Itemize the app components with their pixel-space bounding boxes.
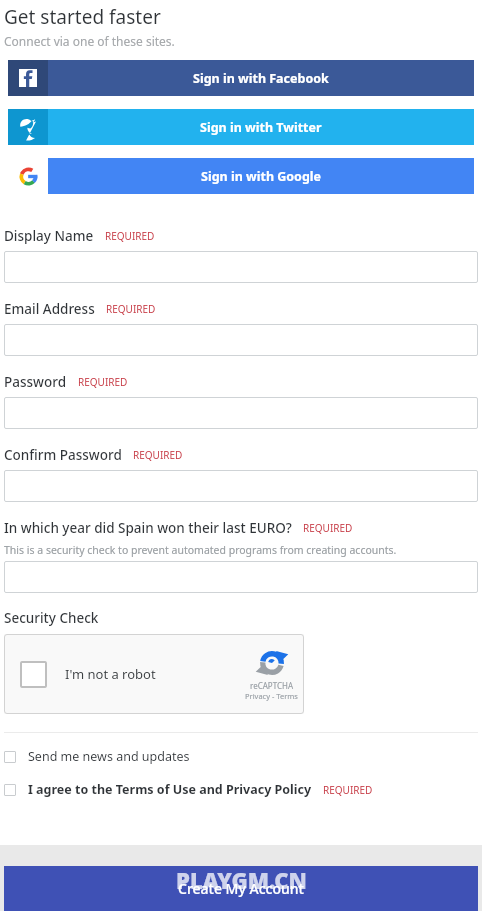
staticText: REQUIRED bbox=[78, 375, 128, 389]
staticText: Sign in with Facebook bbox=[193, 70, 329, 87]
staticText: REQUIRED bbox=[133, 448, 183, 462]
staticText: reCAPTCHA bbox=[250, 680, 294, 691]
button[interactable]: Send me news and updates bbox=[4, 748, 482, 765]
button[interactable] bbox=[4, 561, 478, 593]
staticText: Privacy - Terms bbox=[245, 691, 298, 701]
staticText: Send me news and updates bbox=[28, 748, 190, 765]
staticText: Security Check bbox=[4, 609, 99, 627]
staticText: Sign in with Twitter bbox=[200, 119, 322, 136]
staticText: This is a security check to prevent auto… bbox=[4, 543, 397, 557]
button[interactable] bbox=[4, 251, 478, 283]
button[interactable] bbox=[4, 470, 478, 502]
staticText: Confirm Password bbox=[4, 446, 122, 464]
button[interactable]: Create My Account bbox=[4, 866, 478, 911]
staticText: Sign in with Google bbox=[201, 168, 322, 185]
staticText: Display Name bbox=[4, 227, 94, 245]
staticText: PLAYGM.CN bbox=[176, 865, 307, 895]
staticText: REQUIRED bbox=[323, 783, 373, 797]
staticText: Create My Account bbox=[178, 879, 304, 898]
button[interactable]: I'm not a robot checkbox bbox=[20, 661, 47, 688]
button[interactable] bbox=[4, 324, 478, 356]
staticText: In which year did Spain won their last E… bbox=[4, 519, 292, 537]
button[interactable]: I'm not a robot checkbox bbox=[4, 634, 304, 714]
staticText: I agree to the Terms of Use and Privacy … bbox=[28, 781, 312, 798]
staticText: REQUIRED bbox=[106, 302, 156, 316]
button[interactable]: Sign in with Twitter bbox=[8, 109, 474, 145]
button[interactable] bbox=[4, 397, 478, 429]
staticText: Get started faster bbox=[4, 4, 161, 30]
button[interactable]: Sign in with Facebook bbox=[8, 60, 474, 96]
staticText: Connect via one of these sites. bbox=[4, 33, 175, 49]
button[interactable]: I agree to the Terms of Use and Privacy … bbox=[4, 781, 482, 798]
staticText: REQUIRED bbox=[105, 229, 155, 243]
staticText: I'm not a robot bbox=[65, 665, 156, 683]
button[interactable]: Sign in with Google bbox=[8, 158, 474, 194]
staticText: Password bbox=[4, 373, 67, 391]
staticText: REQUIRED bbox=[303, 521, 353, 535]
staticText: Email Address bbox=[4, 300, 95, 318]
